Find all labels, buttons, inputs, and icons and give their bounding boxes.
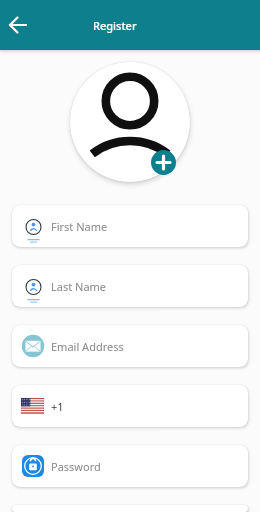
button[interactable]: First Name [12, 205, 248, 247]
button[interactable]: Password [12, 445, 248, 487]
button[interactable]: +1 [12, 385, 248, 427]
staticText: +1 [51, 399, 64, 414]
button[interactable] [151, 150, 176, 175]
button[interactable]: Last Name [12, 265, 248, 307]
staticText: Password [51, 459, 101, 474]
button[interactable]: Email Address [12, 325, 248, 367]
button[interactable] [4, 11, 32, 39]
staticText: Email Address [51, 339, 124, 354]
staticText: Last Name [51, 279, 107, 294]
staticText: Register [93, 18, 137, 33]
staticText: First Name [51, 219, 108, 234]
